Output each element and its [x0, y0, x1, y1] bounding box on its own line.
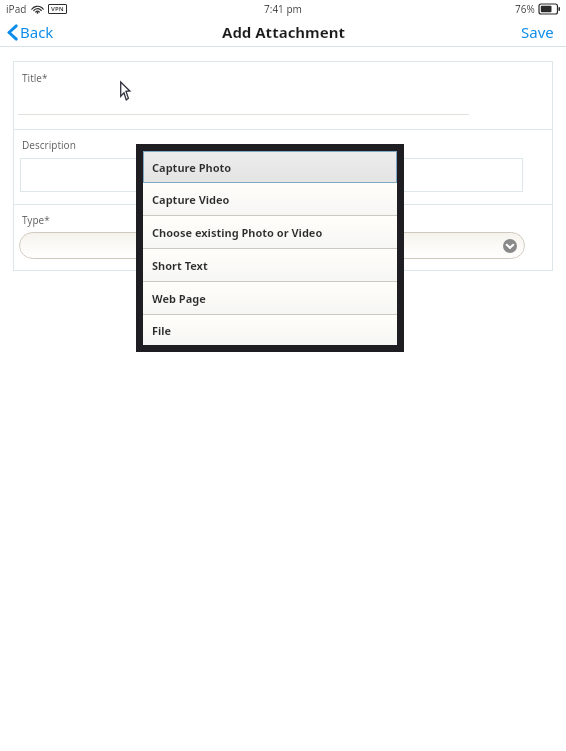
button[interactable]: Choose existing Photo or Video	[143, 216, 397, 248]
staticText: Capture Photo	[152, 160, 232, 175]
button[interactable]: Back	[0, 19, 64, 45]
button[interactable]: Short Text	[143, 249, 397, 281]
staticText: Back	[20, 22, 54, 42]
staticText: Description	[22, 138, 76, 152]
button[interactable]	[20, 158, 523, 192]
staticText: 76%	[515, 2, 535, 16]
staticText: iPad	[6, 2, 27, 16]
button[interactable]: Open type picker	[19, 232, 525, 259]
staticText: Title*	[22, 71, 48, 85]
button[interactable]: Capture Video	[143, 183, 397, 215]
button[interactable]: Web Page	[143, 282, 397, 314]
staticText: Add Attachment	[222, 22, 345, 42]
staticText: VPN	[51, 5, 64, 13]
button[interactable]: Title*	[13, 61, 553, 129]
staticText: Short Text	[152, 258, 208, 273]
staticText: File	[152, 323, 172, 338]
staticText: 7:41 pm	[264, 2, 302, 16]
staticText: Web Page	[152, 291, 206, 306]
button[interactable]: File	[143, 315, 397, 345]
staticText: Choose existing Photo or Video	[152, 225, 323, 240]
staticText: Save	[521, 22, 554, 42]
other: Open type picker	[503, 239, 517, 253]
button[interactable]: Capture Photo	[143, 151, 397, 183]
button[interactable]: Save	[509, 18, 566, 46]
staticText: Capture Video	[152, 192, 230, 207]
staticText: Type*	[22, 213, 50, 227]
